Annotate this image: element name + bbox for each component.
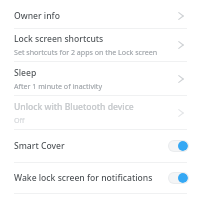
staticText: Owner info — [14, 10, 60, 22]
staticText: Unlock with Bluetooth device — [14, 101, 134, 113]
button[interactable]: Sleep — [0, 62, 200, 95]
staticText: Smart Cover — [14, 140, 65, 152]
other: Open — [173, 71, 189, 87]
other: Open — [173, 8, 189, 24]
staticText: Wake lock screen for notifications — [14, 172, 153, 184]
staticText: Lock screen shortcuts — [14, 33, 104, 45]
staticText: After 1 minute of inactivity — [14, 81, 103, 91]
staticText: Sleep — [14, 67, 37, 79]
button[interactable]: Owner info — [0, 3, 200, 28]
button[interactable]: Unlock with Bluetooth device — [0, 96, 200, 129]
other: Open — [173, 105, 189, 121]
other: Open — [173, 37, 189, 53]
button[interactable]: Lock screen shortcuts — [0, 29, 200, 61]
button[interactable]: Smart Cover — [0, 130, 200, 162]
button[interactable]: Wake lock screen for notifications — [0, 163, 200, 193]
staticText: Off — [14, 115, 25, 125]
staticText: Set shortcuts for 2 apps on the Lock scr… — [14, 47, 158, 57]
